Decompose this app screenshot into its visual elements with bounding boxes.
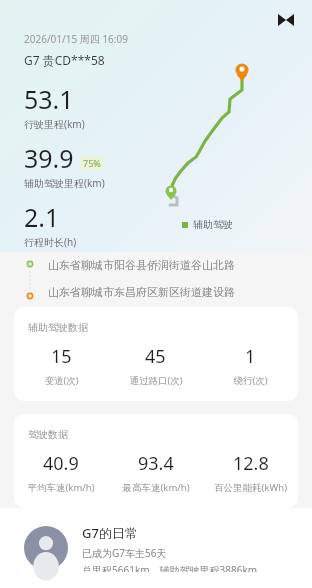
staticText: 12.8 <box>233 451 269 476</box>
staticText: 53.1 <box>24 82 74 116</box>
staticText: 75% <box>83 157 101 169</box>
staticText: 15 <box>51 344 72 369</box>
staticText: 已成为G7车主56天 <box>82 546 167 560</box>
staticText: 山东省聊城市阳谷县侨润街道谷山北路 <box>48 258 235 272</box>
staticText: 总里程5661km，辅助驾驶里程3886km <box>82 563 258 572</box>
staticText: 40.9 <box>43 451 79 476</box>
staticText: 1 <box>245 344 256 369</box>
staticText: 平均车速(km/h) <box>27 481 95 494</box>
staticText: 2026/01/15 周四 16:09 <box>24 32 128 46</box>
staticText: 驾驶数据 <box>28 428 68 441</box>
staticText: G7的日常 <box>82 524 138 542</box>
staticText: 辅助驾驶 <box>193 218 233 231</box>
button[interactable]: Close <box>272 6 300 34</box>
staticText: 2.1 <box>24 200 60 234</box>
button[interactable]: 驾驶数据 <box>14 414 298 508</box>
staticText: 辅助驾驶数据 <box>28 321 88 334</box>
staticText: 变道(次) <box>44 374 79 387</box>
staticText: 百公里能耗(kWh) <box>214 481 287 494</box>
staticText: 行程时长(h) <box>24 235 77 249</box>
staticText: 通过路口(次) <box>129 374 183 387</box>
staticText: 93.4 <box>138 451 174 476</box>
staticText: 绕行(次) <box>233 374 268 387</box>
staticText: 39.9 <box>24 141 74 175</box>
staticText: 行驶里程(km) <box>24 117 85 131</box>
staticText: 最高车速(km/h) <box>122 481 190 494</box>
staticText: 45 <box>145 344 166 369</box>
staticText: 辅助驾驶里程(km) <box>24 176 105 190</box>
staticText: 山东省聊城市东昌府区新区街道建设路 <box>48 285 235 299</box>
button[interactable]: G7的日常 <box>0 508 312 588</box>
staticText: G7 贵CD***58 <box>24 52 105 68</box>
button[interactable]: 辅助驾驶数据 <box>14 307 298 401</box>
